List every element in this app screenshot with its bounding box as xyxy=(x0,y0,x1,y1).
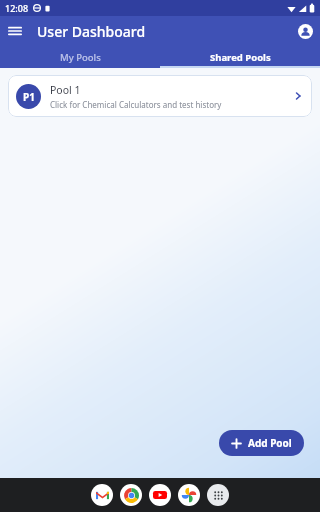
button[interactable]: Add Pool xyxy=(219,430,304,456)
button[interactable]: Open navigation menu xyxy=(0,16,30,46)
button[interactable]: My Pools xyxy=(0,46,160,68)
button[interactable]: YouTube xyxy=(149,484,171,506)
staticText: Shared Pools xyxy=(210,51,271,64)
staticText: Pool 1 xyxy=(50,83,81,97)
button[interactable]: Gmail xyxy=(91,484,113,506)
button[interactable]: P1 xyxy=(8,75,312,117)
button[interactable]: Chrome xyxy=(120,484,142,506)
staticText: My Pools xyxy=(60,51,101,64)
button[interactable]: All apps xyxy=(207,484,229,506)
staticText: User Dashboard xyxy=(37,22,146,41)
staticText: Click for Chemical Calculators and test … xyxy=(50,99,222,110)
staticText: Add Pool xyxy=(248,436,292,450)
staticText: 12:08 xyxy=(5,2,29,14)
button[interactable]: Account xyxy=(290,16,320,46)
staticText: P1 xyxy=(23,90,35,104)
button[interactable]: Photos xyxy=(178,484,200,506)
button[interactable]: Shared Pools xyxy=(160,46,320,68)
